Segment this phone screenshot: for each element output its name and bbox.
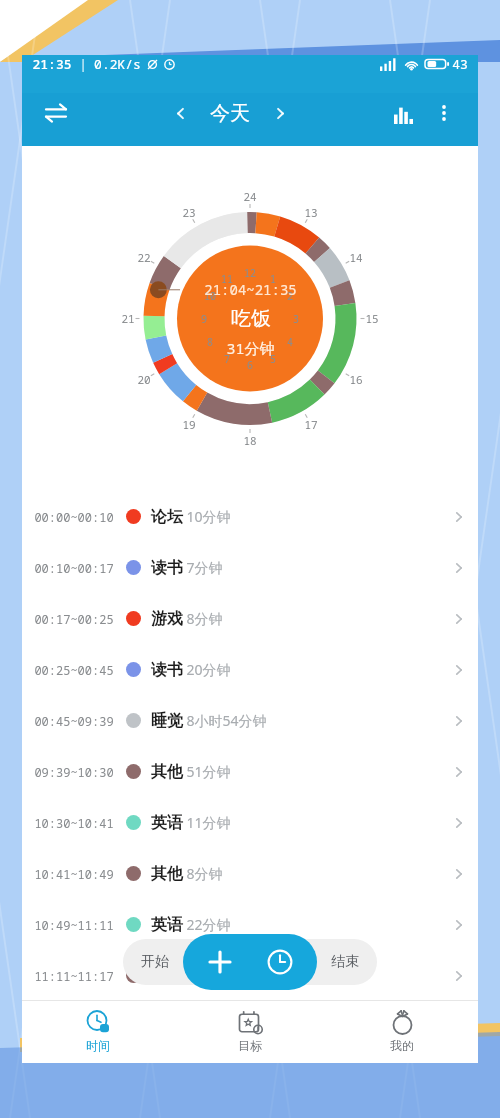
button[interactable]: 10:49~11:11 <box>22 899 478 950</box>
staticText: 14 <box>349 250 363 265</box>
staticText: 21 <box>121 311 135 326</box>
staticText: 10:49~11:11 <box>34 917 114 933</box>
staticText: 5 <box>270 352 276 366</box>
staticText: 00:17~00:25 <box>34 611 114 627</box>
staticText: 4 <box>287 335 293 349</box>
staticText: 19 <box>182 417 196 432</box>
button[interactable]: 结束 <box>331 953 377 971</box>
staticText: 00:25~00:45 <box>34 662 114 678</box>
staticText: 论坛 <box>151 507 183 527</box>
staticText: 20分钟 <box>186 660 231 679</box>
button[interactable]: 00:00~00:10 <box>22 491 478 542</box>
button[interactable]: Switch view <box>36 93 76 133</box>
staticText: 9 <box>201 312 207 326</box>
button[interactable]: 11:11~11:17 <box>22 950 478 1001</box>
staticText: 17 <box>304 417 318 432</box>
staticText: 8 <box>207 335 213 349</box>
button[interactable]: Statistics <box>384 93 424 133</box>
button[interactable]: 目标 <box>174 1010 326 1053</box>
staticText: | <box>79 56 87 72</box>
button[interactable]: 我的 <box>326 1010 478 1053</box>
staticText: 24 <box>243 189 257 204</box>
staticText: 英语 <box>151 813 183 833</box>
staticText: 其他 <box>151 762 183 782</box>
staticText: 游戏 <box>151 609 183 629</box>
staticText: 10:30~10:41 <box>34 815 114 831</box>
staticText: 8分钟 <box>186 609 223 628</box>
staticText: 开始 <box>141 953 169 971</box>
staticText: 读书 <box>151 558 183 578</box>
staticText: 8小时54分钟 <box>186 711 267 730</box>
staticText: 15 <box>365 311 379 326</box>
staticText: 18 <box>243 433 257 448</box>
button[interactable]: Previous day <box>162 95 198 131</box>
button[interactable]: 09:39~10:30 <box>22 746 478 797</box>
button[interactable]: Timer <box>257 939 303 985</box>
staticText: 11 <box>221 272 233 286</box>
staticText: 31分钟 <box>226 338 275 358</box>
staticText: 20 <box>137 372 151 387</box>
staticText: 结束 <box>331 953 359 971</box>
staticText: 吃饭 <box>231 306 271 331</box>
button[interactable]: 00:45~09:39 <box>22 695 478 746</box>
staticText: 10 <box>204 289 216 303</box>
button[interactable]: 开始 <box>123 953 169 971</box>
staticText: 51分钟 <box>186 762 231 781</box>
staticText: 0.2K/s <box>94 55 141 73</box>
staticText: 10:41~10:49 <box>34 866 114 882</box>
staticText: 读书 <box>151 660 183 680</box>
button[interactable]: Next day <box>262 95 298 131</box>
staticText: 其他 <box>151 864 183 884</box>
staticText: 00:10~00:17 <box>34 560 114 576</box>
staticText: 21:04~21:35 <box>204 280 297 299</box>
staticText: 00:00~00:10 <box>34 509 114 525</box>
button[interactable]: Add record <box>197 939 243 985</box>
staticText: 13 <box>304 205 318 220</box>
staticText: 时间 <box>86 1038 110 1053</box>
staticText: 22 <box>137 250 151 265</box>
staticText: 22分钟 <box>186 915 231 934</box>
staticText: 09:39~10:30 <box>34 764 114 780</box>
staticText: 睡觉 <box>151 711 183 731</box>
button[interactable]: 00:25~00:45 <box>22 644 478 695</box>
button[interactable]: 00:10~00:17 <box>22 542 478 593</box>
staticText: 英语 <box>151 915 183 935</box>
staticText: 11分钟 <box>186 813 231 832</box>
staticText: 16 <box>349 372 363 387</box>
staticText: 6 <box>247 358 253 372</box>
staticText: 2 <box>287 289 293 303</box>
staticText: 7分钟 <box>186 558 223 577</box>
staticText: 11:11~11:17 <box>34 968 114 984</box>
staticText: 我的 <box>390 1038 414 1053</box>
staticText: 43 <box>452 55 468 73</box>
button[interactable]: 今天 <box>198 101 262 126</box>
button[interactable]: More options <box>424 93 464 133</box>
staticText: 3 <box>293 312 299 326</box>
staticText: 目标 <box>238 1038 262 1053</box>
button[interactable]: 00:17~00:25 <box>22 593 478 644</box>
staticText: 8分钟 <box>186 864 223 883</box>
button[interactable]: 10:30~10:41 <box>22 797 478 848</box>
staticText: 21:35 <box>32 55 72 73</box>
staticText: 10分钟 <box>186 507 231 526</box>
staticText: 6分钟 <box>186 966 223 985</box>
staticText: 1 <box>270 272 276 286</box>
staticText: 12 <box>244 266 256 280</box>
staticText: 7 <box>224 352 230 366</box>
staticText: 23 <box>182 205 196 220</box>
staticText: 其他 <box>151 966 183 986</box>
button[interactable]: 10:41~10:49 <box>22 848 478 899</box>
staticText: 今天 <box>210 101 250 126</box>
button[interactable]: 时间 <box>22 1010 174 1053</box>
staticText: 00:45~09:39 <box>34 713 114 729</box>
